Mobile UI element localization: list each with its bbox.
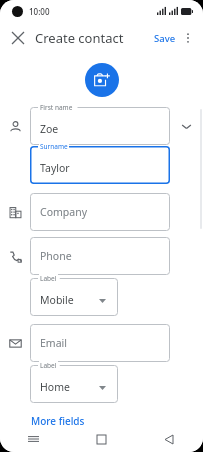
staticText: Save [154, 32, 176, 45]
button[interactable]: Surname [30, 146, 170, 184]
button[interactable]: First name [30, 107, 170, 145]
staticText: Taylor [40, 161, 70, 175]
staticText: Email [40, 336, 67, 350]
staticText: Company [40, 205, 87, 219]
staticText: First name [40, 103, 73, 112]
staticText: Create contact [35, 29, 124, 47]
button[interactable]: More fields [30, 413, 86, 429]
button[interactable]: Company [30, 193, 170, 231]
button[interactable]: Save [150, 29, 180, 48]
staticText: More fields [31, 414, 85, 428]
button[interactable]: Expand name fields [170, 107, 203, 145]
button[interactable]: More options [175, 25, 201, 51]
button[interactable]: Add photo [85, 63, 119, 97]
staticText: Phone [40, 249, 72, 263]
staticText: 10:00 [29, 6, 50, 17]
staticText: Home [40, 380, 70, 394]
button[interactable]: Close [4, 24, 32, 52]
staticText: Zoe [40, 122, 59, 136]
staticText: Mobile [40, 293, 74, 307]
button[interactable]: Email [30, 324, 170, 362]
button[interactable]: Recents [0, 426, 67, 452]
button[interactable]: Phone [30, 237, 170, 275]
staticText: Surname [40, 142, 68, 151]
button[interactable]: Label [30, 278, 118, 316]
staticText: Label [40, 274, 57, 283]
staticText: Label [40, 361, 57, 370]
button[interactable]: Back [135, 426, 203, 452]
button[interactable]: Home [67, 426, 135, 452]
button[interactable]: Label [30, 365, 118, 403]
